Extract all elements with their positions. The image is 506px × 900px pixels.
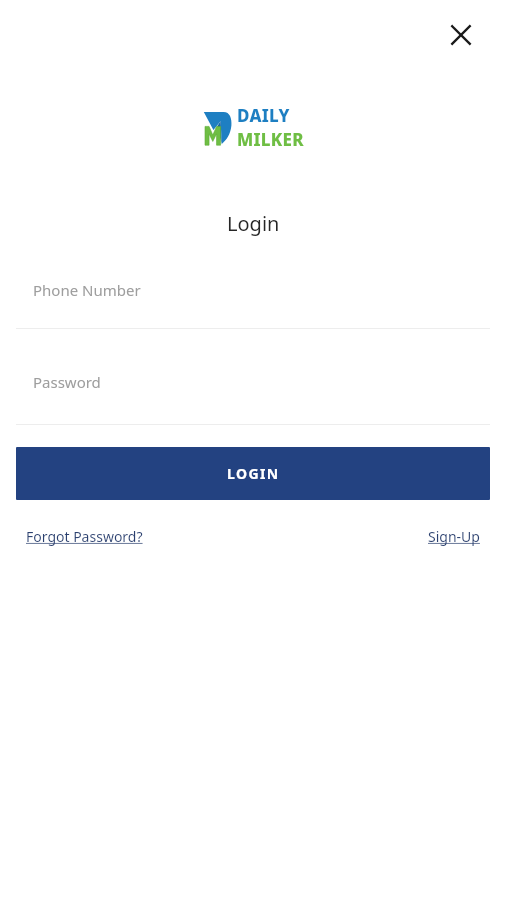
button[interactable]: LOGIN [16, 447, 490, 500]
staticText: Password [33, 372, 101, 392]
staticText: Sign-Up [428, 527, 480, 546]
button[interactable]: Forgot Password? [26, 522, 143, 551]
staticText: Forgot Password? [26, 527, 143, 546]
staticText: MILKER [237, 128, 304, 151]
staticText: LOGIN [227, 464, 280, 483]
staticText: Login [227, 210, 280, 237]
staticText: DAILY [237, 104, 290, 127]
button[interactable]: Password [0, 354, 506, 422]
button[interactable]: Close [437, 11, 485, 59]
staticText: Phone Number [33, 280, 141, 300]
button[interactable]: Sign-Up [428, 522, 480, 551]
button[interactable]: Phone Number [0, 262, 506, 328]
